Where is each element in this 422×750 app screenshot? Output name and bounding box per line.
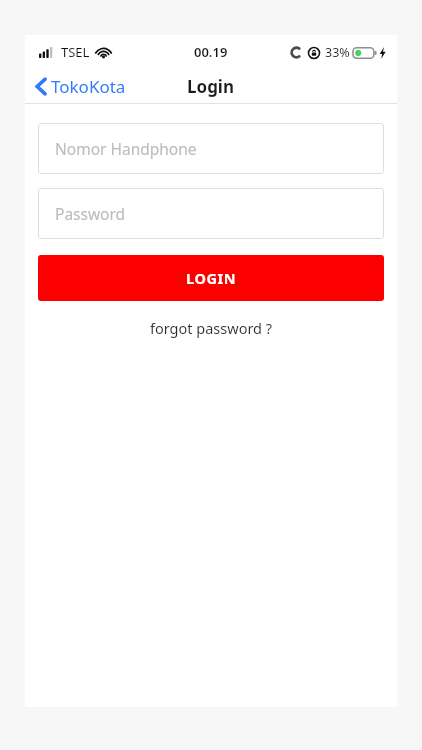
button[interactable]: TokoKota [25,71,136,102]
staticText: TokoKota [51,75,126,98]
staticText: TSEL [61,43,90,61]
button[interactable]: Nomor Handphone [38,123,384,174]
staticText: 33% [325,44,350,61]
button[interactable]: forgot password ? [140,315,283,341]
button[interactable]: Password [38,188,384,239]
staticText: Password [55,203,126,224]
staticText: LOGIN [186,268,237,288]
staticText: Nomor Handphone [55,138,197,159]
staticText: Login [187,75,235,98]
staticText: 00.19 [194,43,228,61]
staticText: forgot password ? [150,318,273,338]
button[interactable]: LOGIN [38,255,384,301]
